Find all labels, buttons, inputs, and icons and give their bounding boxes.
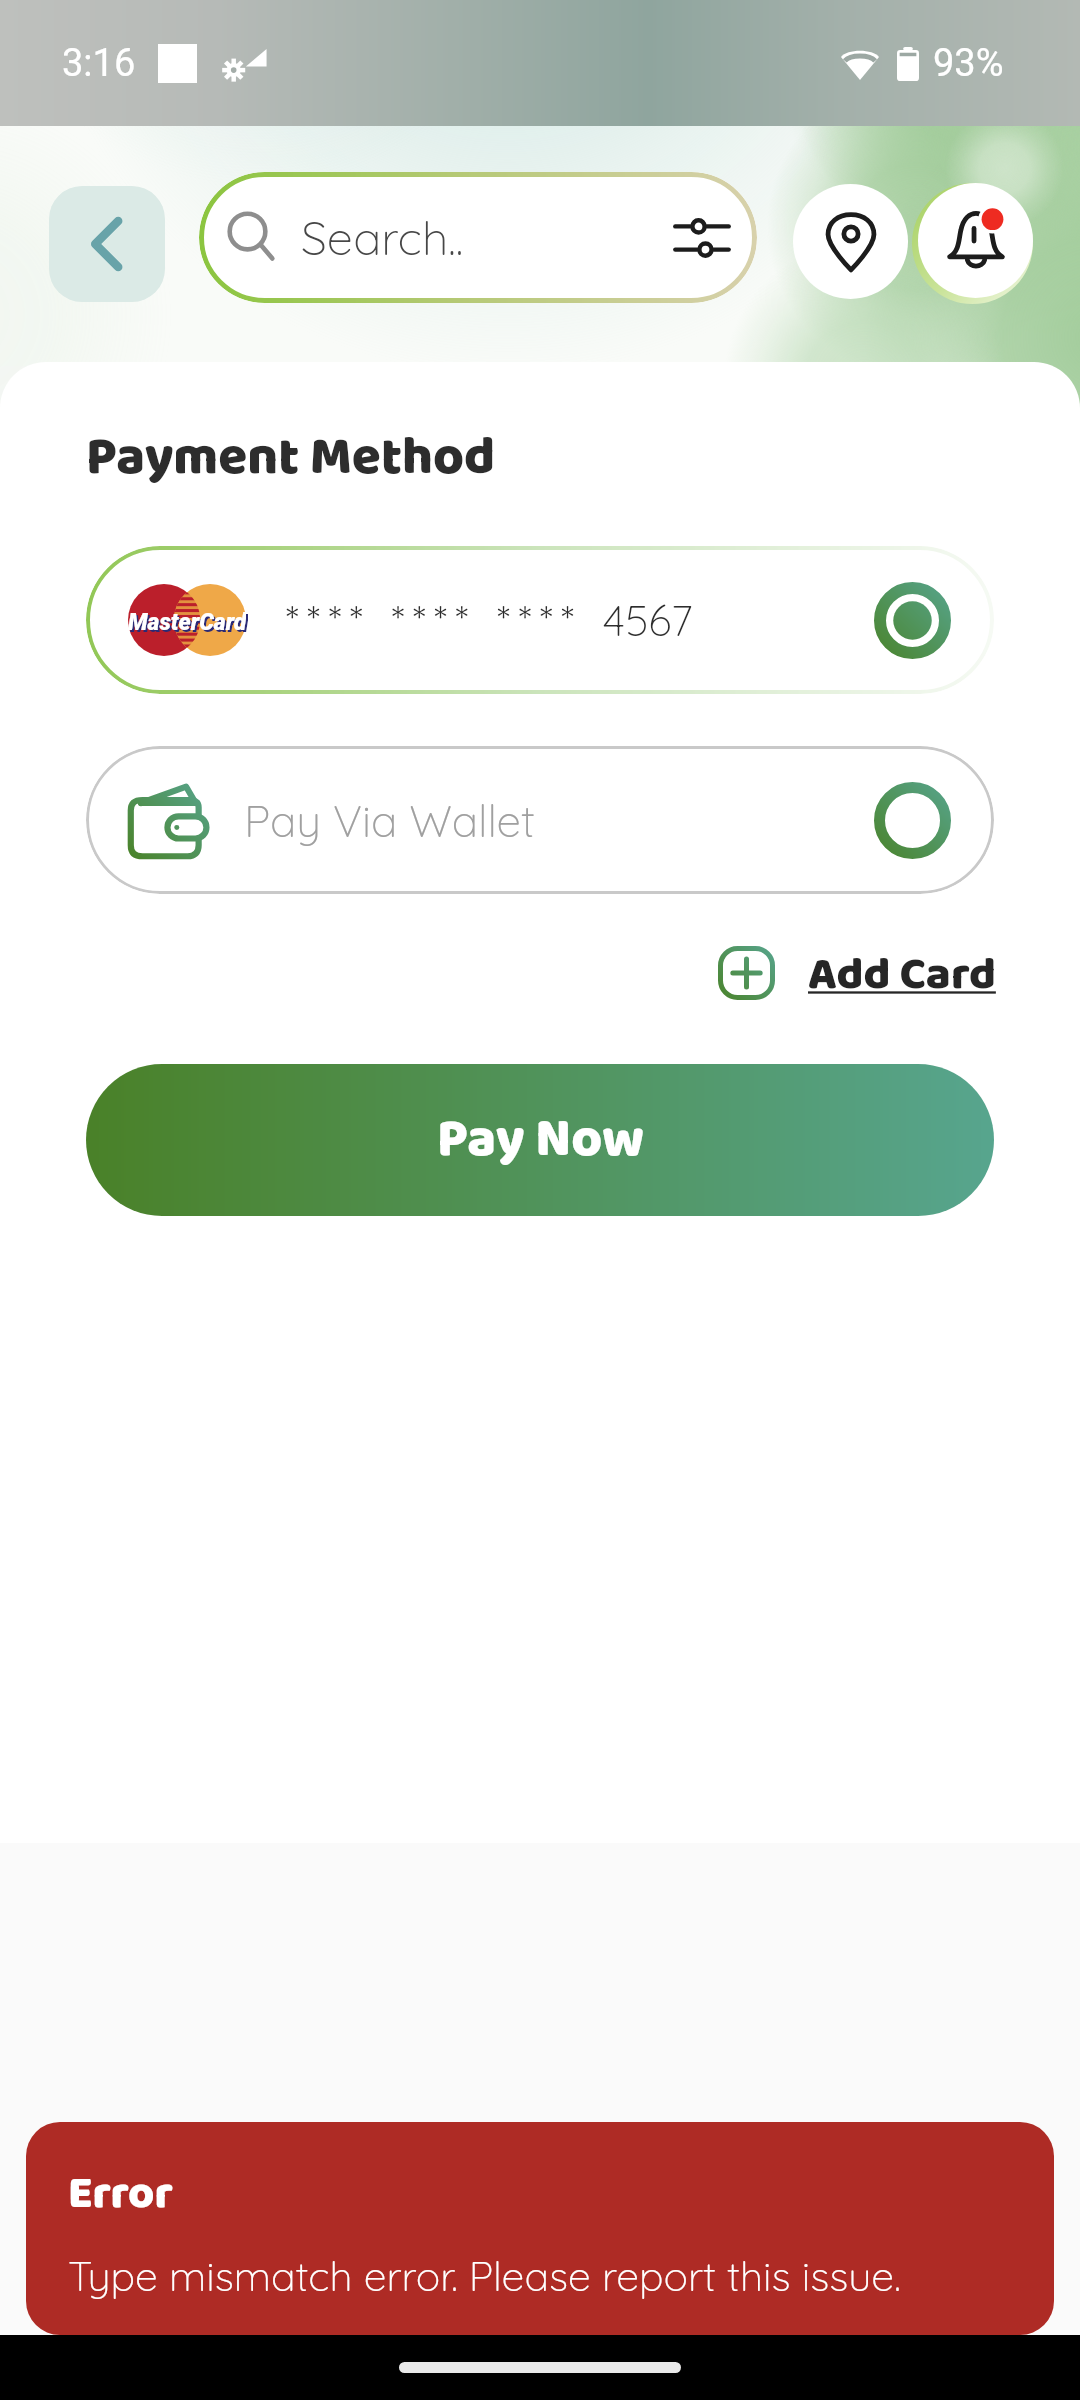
staticText: 3:16 xyxy=(62,41,136,86)
button[interactable]: Search.. xyxy=(199,172,757,303)
staticText: Pay Now xyxy=(437,1098,644,1183)
staticText: **** **** **** 4567 xyxy=(286,593,693,647)
button[interactable]: Location xyxy=(793,184,908,299)
staticText: Search.. xyxy=(301,208,464,267)
button[interactable]: Back xyxy=(49,186,165,302)
button[interactable]: MasterCard xyxy=(86,546,994,694)
staticText: Payment Method xyxy=(86,416,496,501)
button[interactable]: Pay Via Wallet xyxy=(86,746,994,894)
staticText: MasterCard xyxy=(128,609,246,636)
staticText: Error xyxy=(68,2158,173,2230)
button[interactable]: Notifications xyxy=(918,183,1033,298)
button[interactable]: Add Card xyxy=(718,938,996,1008)
staticText: MasterCard xyxy=(130,611,248,638)
staticText: 93% xyxy=(933,41,1004,86)
staticText: Add Card xyxy=(808,938,996,1008)
staticText: Type mismatch error. Please report this … xyxy=(68,2250,901,2301)
button[interactable]: Pay Now xyxy=(86,1064,994,1216)
staticText: Pay Via Wallet xyxy=(244,793,535,848)
